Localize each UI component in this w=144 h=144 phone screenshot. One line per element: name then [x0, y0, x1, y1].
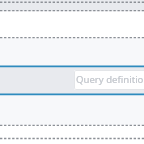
staticText: Query definition [76, 73, 144, 86]
button[interactable]: Query definition input [74, 70, 144, 90]
